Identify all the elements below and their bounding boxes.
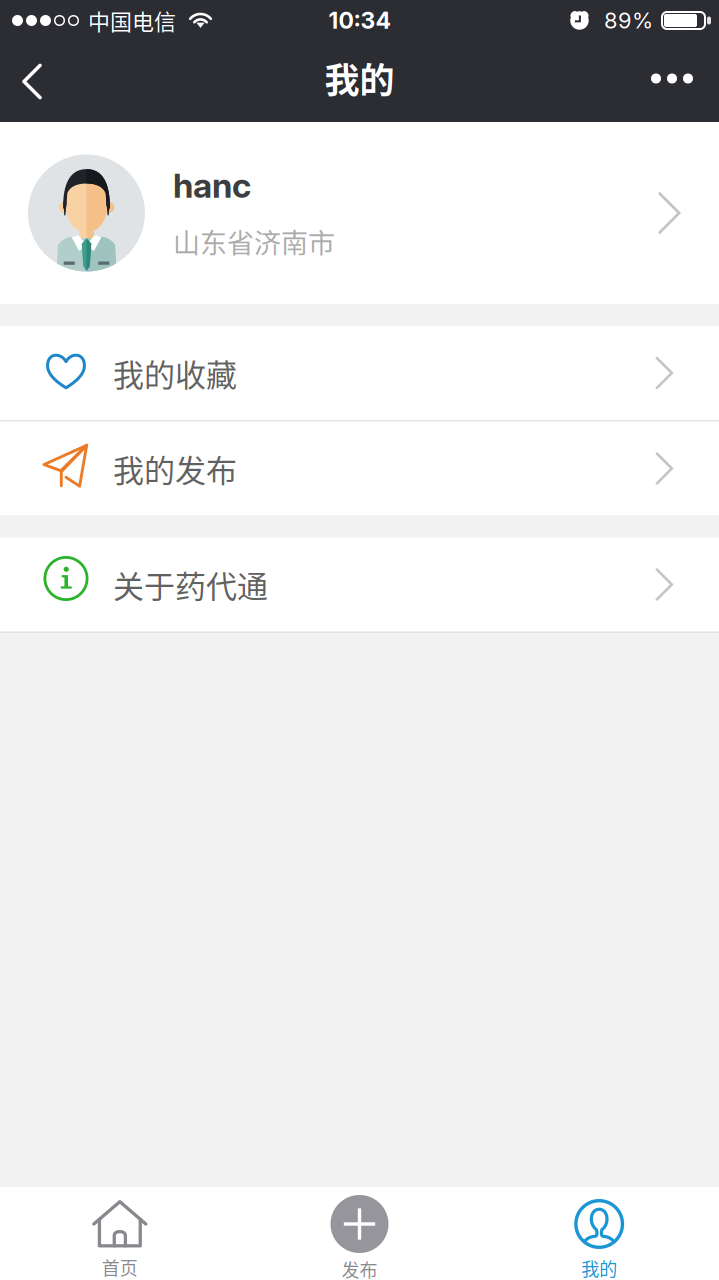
- button[interactable]: 发布: [240, 1187, 479, 1280]
- button[interactable]: More options: [641, 46, 703, 116]
- staticText: 89%: [604, 7, 653, 34]
- staticText: 我的收藏: [113, 351, 237, 395]
- staticText: 我的: [324, 53, 394, 103]
- button[interactable]: 我的收藏: [0, 326, 719, 420]
- staticText: 发布: [341, 1256, 377, 1280]
- staticText: 山东省济南市: [173, 222, 335, 261]
- button[interactable]: 我的: [479, 1187, 719, 1280]
- button[interactable]: 关于药代通: [0, 537, 719, 631]
- button[interactable]: 首页: [0, 1187, 240, 1280]
- button[interactable]: hanc: [0, 122, 719, 304]
- staticText: hanc: [173, 165, 251, 206]
- staticText: 我的: [581, 1255, 617, 1280]
- staticText: 首页: [102, 1254, 138, 1280]
- button[interactable]: 我的发布: [0, 421, 719, 515]
- staticText: 中国电信: [88, 5, 176, 36]
- staticText: 关于药代通: [113, 562, 268, 607]
- staticText: 我的发布: [113, 446, 237, 491]
- button[interactable]: Back: [1, 46, 63, 116]
- staticText: 10:34: [328, 7, 390, 34]
